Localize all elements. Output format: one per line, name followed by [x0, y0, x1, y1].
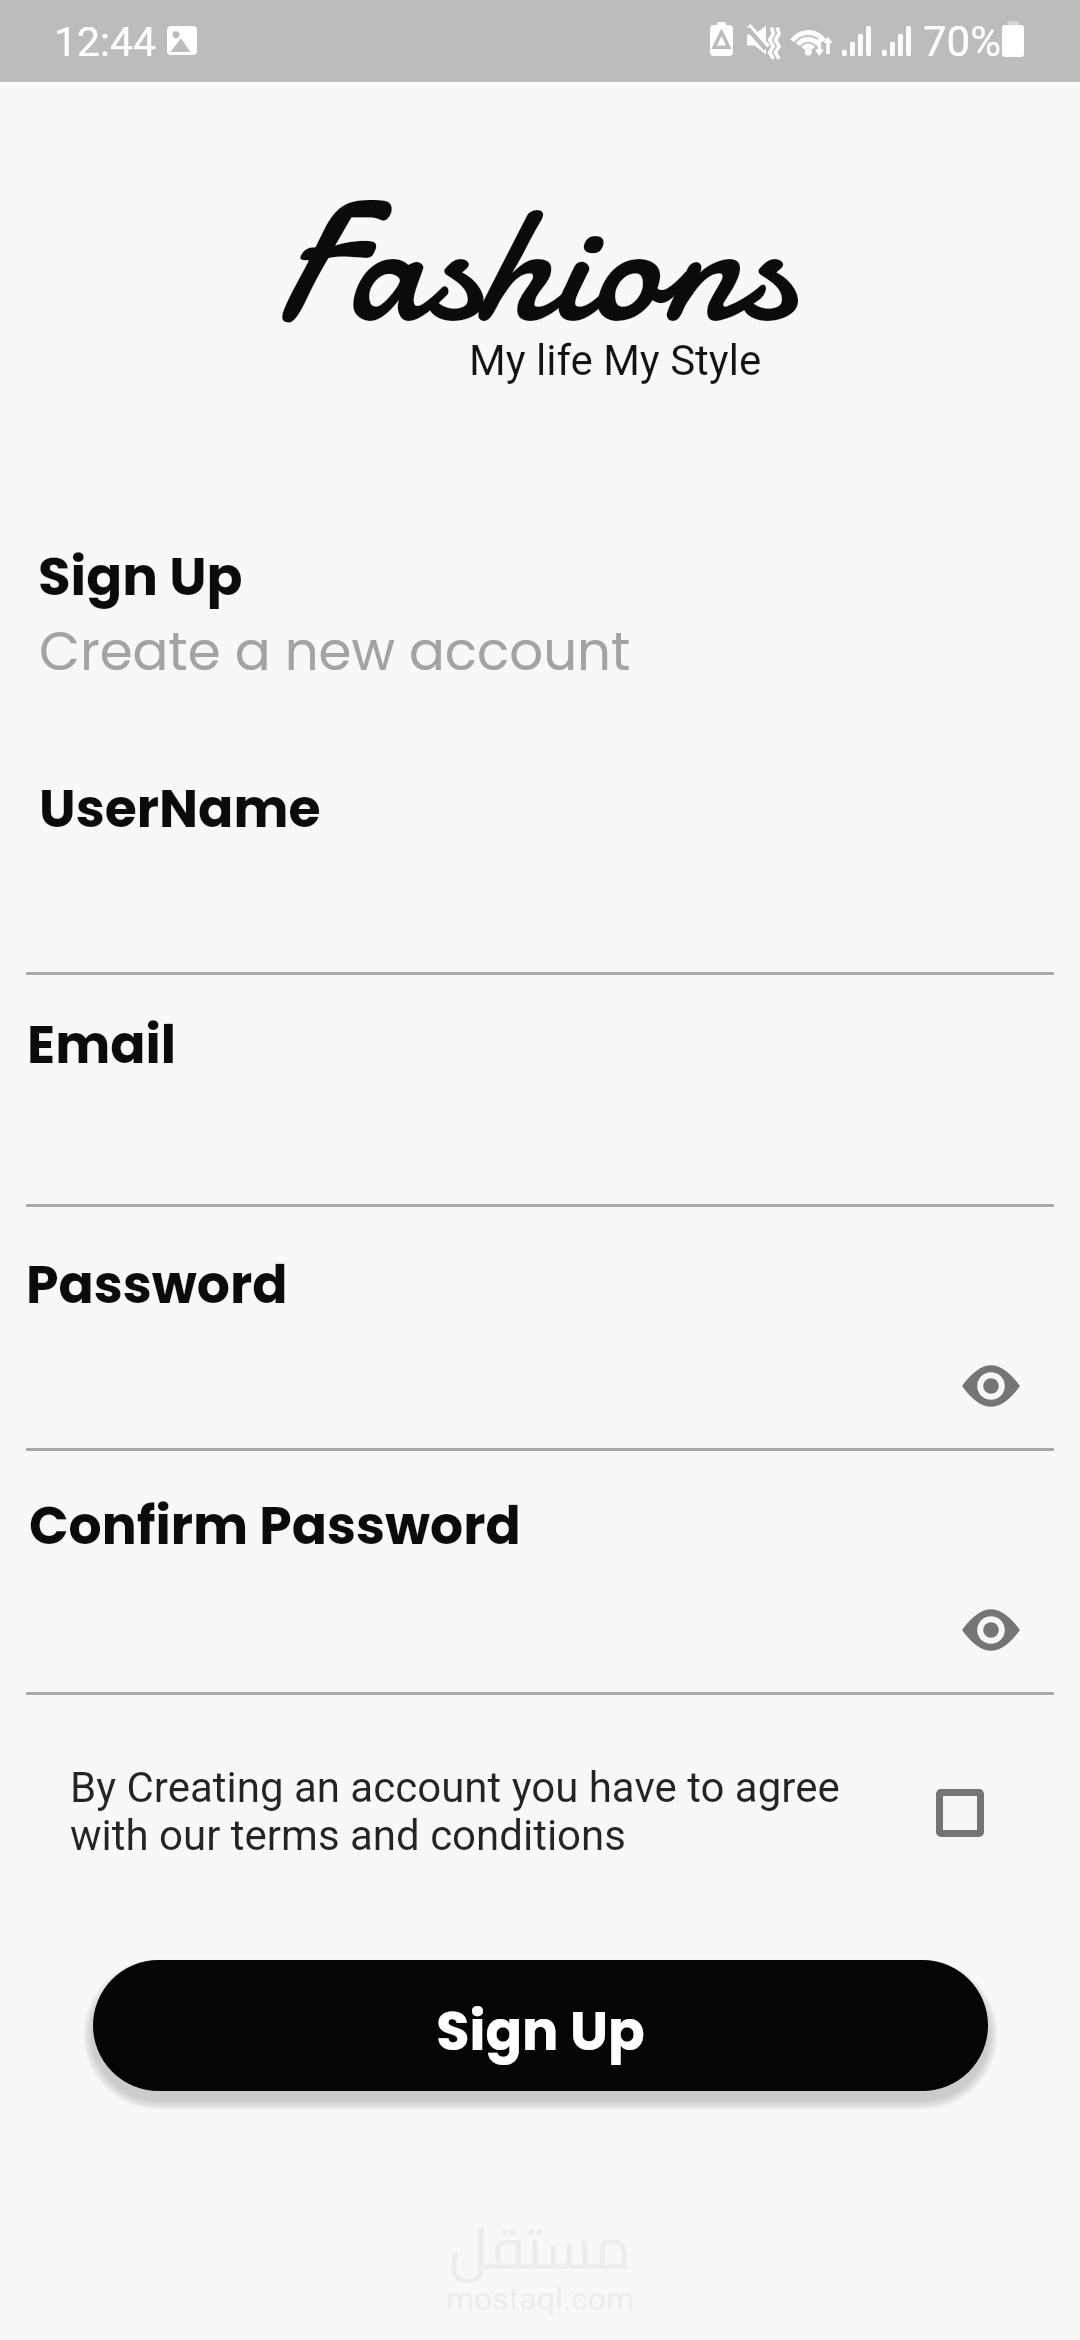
staticText: Sign Up: [436, 1993, 645, 2069]
button[interactable]: Show password: [945, 1584, 1037, 1676]
staticText: My life My Style: [469, 336, 762, 385]
staticText: Create a new account: [39, 614, 631, 688]
staticText: 12:44: [54, 18, 157, 66]
button[interactable]: Show password: [945, 1340, 1037, 1432]
staticText: Fashions: [277, 147, 795, 381]
staticText: 70%: [923, 17, 1001, 66]
staticText: Sign Up: [38, 539, 243, 613]
staticText: مستقل: [449, 2193, 631, 2302]
staticText: Email: [27, 1008, 177, 1081]
button[interactable]: Sign Up: [93, 1960, 988, 2091]
staticText: Password: [26, 1248, 288, 1321]
staticText: UserName: [39, 772, 321, 845]
staticText: Confirm Password: [29, 1489, 521, 1562]
staticText: mostaql.com: [446, 2280, 635, 2318]
button[interactable]: Agree to terms and conditions: [920, 1773, 1000, 1853]
staticText: By Creating an account you have to agree…: [70, 1763, 840, 1860]
